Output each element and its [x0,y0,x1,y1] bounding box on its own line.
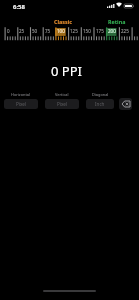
staticText: Pixel [57,101,68,107]
staticText: 150 [83,28,91,34]
staticText: Horizontal [11,92,31,97]
staticText: 200 [108,28,116,34]
staticText: 50 [32,28,38,34]
staticText: 225 [121,28,129,34]
staticText: 25 [19,28,25,34]
staticText: 0 PPI [0,62,136,80]
button[interactable]: Inch [86,99,114,109]
staticText: 100 [57,28,65,34]
staticText: Retina [108,18,126,25]
staticText: Vertical [55,92,69,97]
staticText: 75 [45,28,51,34]
button[interactable]: Pixel [45,99,79,109]
staticText: 125 [70,28,78,34]
staticText: 175 [96,28,104,34]
staticText: Classic [54,18,73,25]
button[interactable]: Pixel [4,99,38,109]
button[interactable]: Backspace [119,98,132,110]
staticText: 6:58 [13,3,25,11]
staticText: Inch [95,101,105,107]
staticText: Diagonal [92,92,109,97]
staticText: Pixel [16,101,27,107]
staticText: 0 [7,28,10,34]
